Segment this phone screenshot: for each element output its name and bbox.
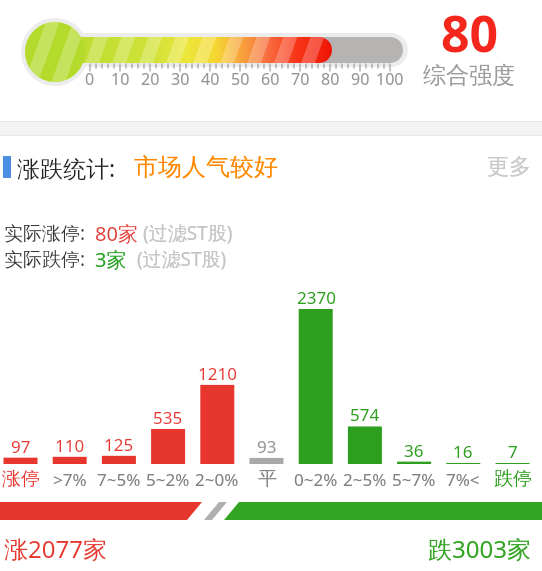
staticText: 市场人气较好 <box>134 152 278 182</box>
staticText: 实际跌停: <box>4 246 91 272</box>
staticText: 平 <box>258 467 277 491</box>
staticText: 7%< <box>446 468 480 491</box>
staticText: 7~5% <box>97 468 141 491</box>
staticText: 2~5% <box>343 468 387 491</box>
staticText: 36 <box>404 439 424 462</box>
staticText: 80 <box>441 0 499 63</box>
staticText: 125 <box>104 433 134 456</box>
staticText: 110 <box>55 434 85 457</box>
staticText: 综合强度 <box>423 61 515 90</box>
staticText: 60 <box>261 68 280 90</box>
staticText: 0~2% <box>294 468 338 491</box>
staticText: 70 <box>291 68 310 90</box>
staticText: 20 <box>141 68 160 90</box>
staticText: >7% <box>53 468 87 491</box>
staticText: 97 <box>11 435 31 458</box>
staticText: 80家 <box>95 220 138 246</box>
staticText: 跌停 <box>494 467 532 491</box>
staticText: 2~0% <box>195 468 239 491</box>
staticText: 5~7% <box>392 468 436 491</box>
staticText: 更多 <box>487 153 531 181</box>
staticText: 涨2077家 <box>4 532 107 565</box>
staticText: 5~2% <box>146 468 190 491</box>
staticText: 30 <box>171 68 190 90</box>
button[interactable]: 涨跌统计: <box>0 150 542 184</box>
staticText: 7 <box>508 440 518 463</box>
staticText: 跌3003家 <box>428 532 531 565</box>
staticText: 10 <box>111 68 130 90</box>
staticText: 40 <box>201 68 220 90</box>
staticText: 90 <box>351 68 370 90</box>
staticText: 535 <box>153 406 183 429</box>
staticText: 3家 <box>95 246 127 272</box>
staticText: 2370 <box>297 286 336 309</box>
staticText: 50 <box>231 68 250 90</box>
staticText: 574 <box>350 403 380 426</box>
staticText: 16 <box>453 440 473 463</box>
staticText: 80 <box>321 68 340 90</box>
staticText: 93 <box>257 435 277 458</box>
staticText: (过滤ST股) <box>138 220 233 246</box>
staticText: (过滤ST股) <box>127 246 227 272</box>
staticText: 1210 <box>198 362 237 385</box>
staticText: 100 <box>376 68 404 90</box>
staticText: 涨跌统计: <box>17 152 116 183</box>
staticText: 涨停 <box>2 467 40 491</box>
staticText: 0 <box>85 68 95 90</box>
staticText: 实际涨停: <box>4 220 91 246</box>
